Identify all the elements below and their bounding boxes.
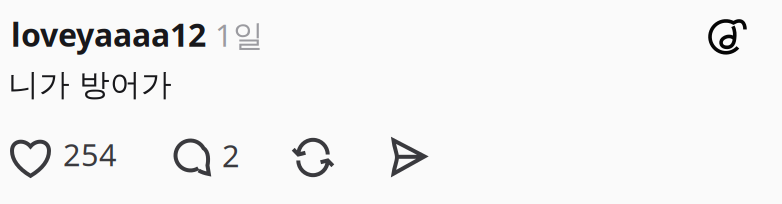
staticText: loveyaaaa12 [11,13,206,55]
staticText: 254 [63,134,117,175]
staticText: 니가 방어가 [8,66,172,104]
staticText: 2 [222,135,240,176]
button[interactable]: 2 [175,137,227,178]
button[interactable]: Share [391,139,425,175]
button[interactable]: 254 [12,137,103,178]
staticText: 1일 [215,14,264,55]
button[interactable]: Threads [710,16,745,55]
button[interactable]: Repost [294,140,332,175]
